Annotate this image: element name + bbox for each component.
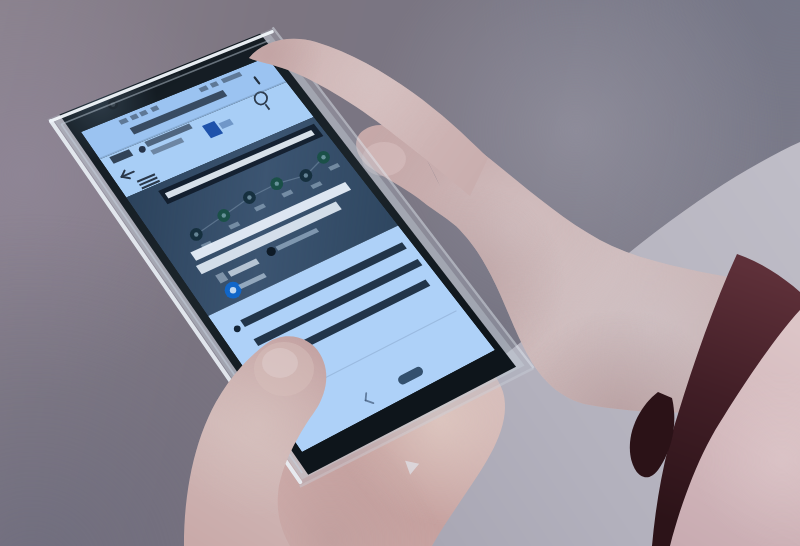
button[interactable] (0, 0, 800, 546)
